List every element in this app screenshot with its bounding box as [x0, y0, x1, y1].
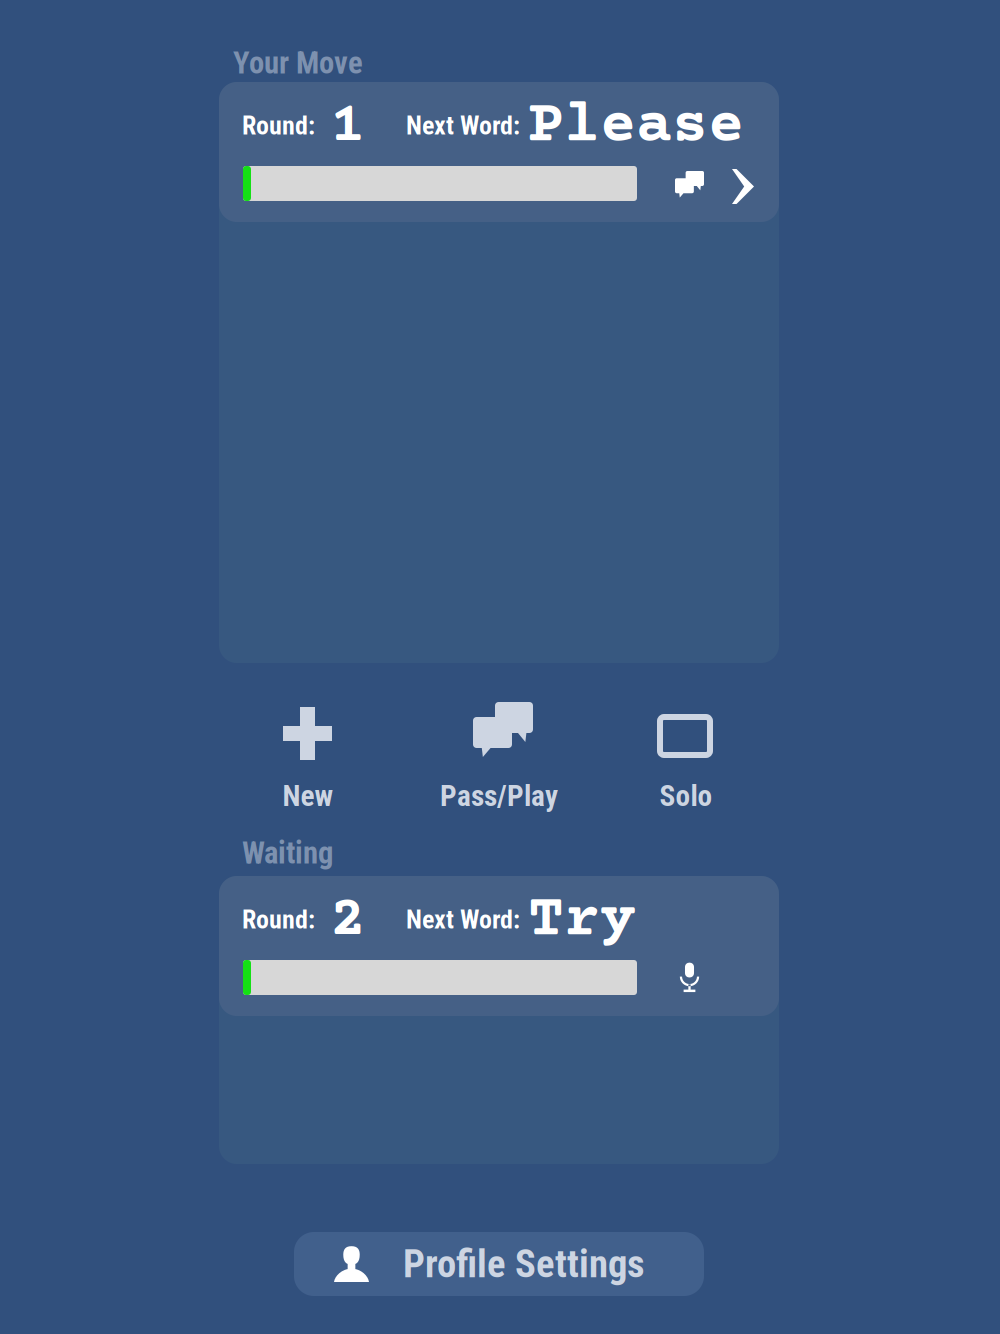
staticText: Round:: [242, 904, 315, 935]
staticText: Round:: [242, 110, 315, 141]
button[interactable]: Pass/Play: [0, 0, 1000, 1334]
staticText: 2: [330, 888, 365, 954]
staticText: Solo: [659, 779, 712, 813]
button[interactable]: Voice message: [0, 0, 1000, 1334]
staticText: Your Move: [233, 45, 363, 81]
staticText: Profile Settings: [403, 1241, 645, 1287]
staticText: Please: [528, 93, 744, 161]
button[interactable]: Open game: [0, 0, 1000, 1334]
staticText: Waiting: [242, 835, 333, 871]
button[interactable]: Messages: [0, 0, 1000, 1334]
staticText: New: [282, 779, 333, 813]
staticText: 1: [330, 94, 365, 160]
button[interactable]: Profile Settings: [0, 0, 1000, 1334]
button[interactable]: Solo: [0, 0, 1000, 1334]
staticText: Next Word:: [406, 110, 520, 141]
staticText: Next Word:: [406, 904, 520, 935]
staticText: Pass/Play: [440, 779, 558, 813]
staticText: Try: [528, 887, 636, 955]
button[interactable]: New: [0, 0, 1000, 1334]
